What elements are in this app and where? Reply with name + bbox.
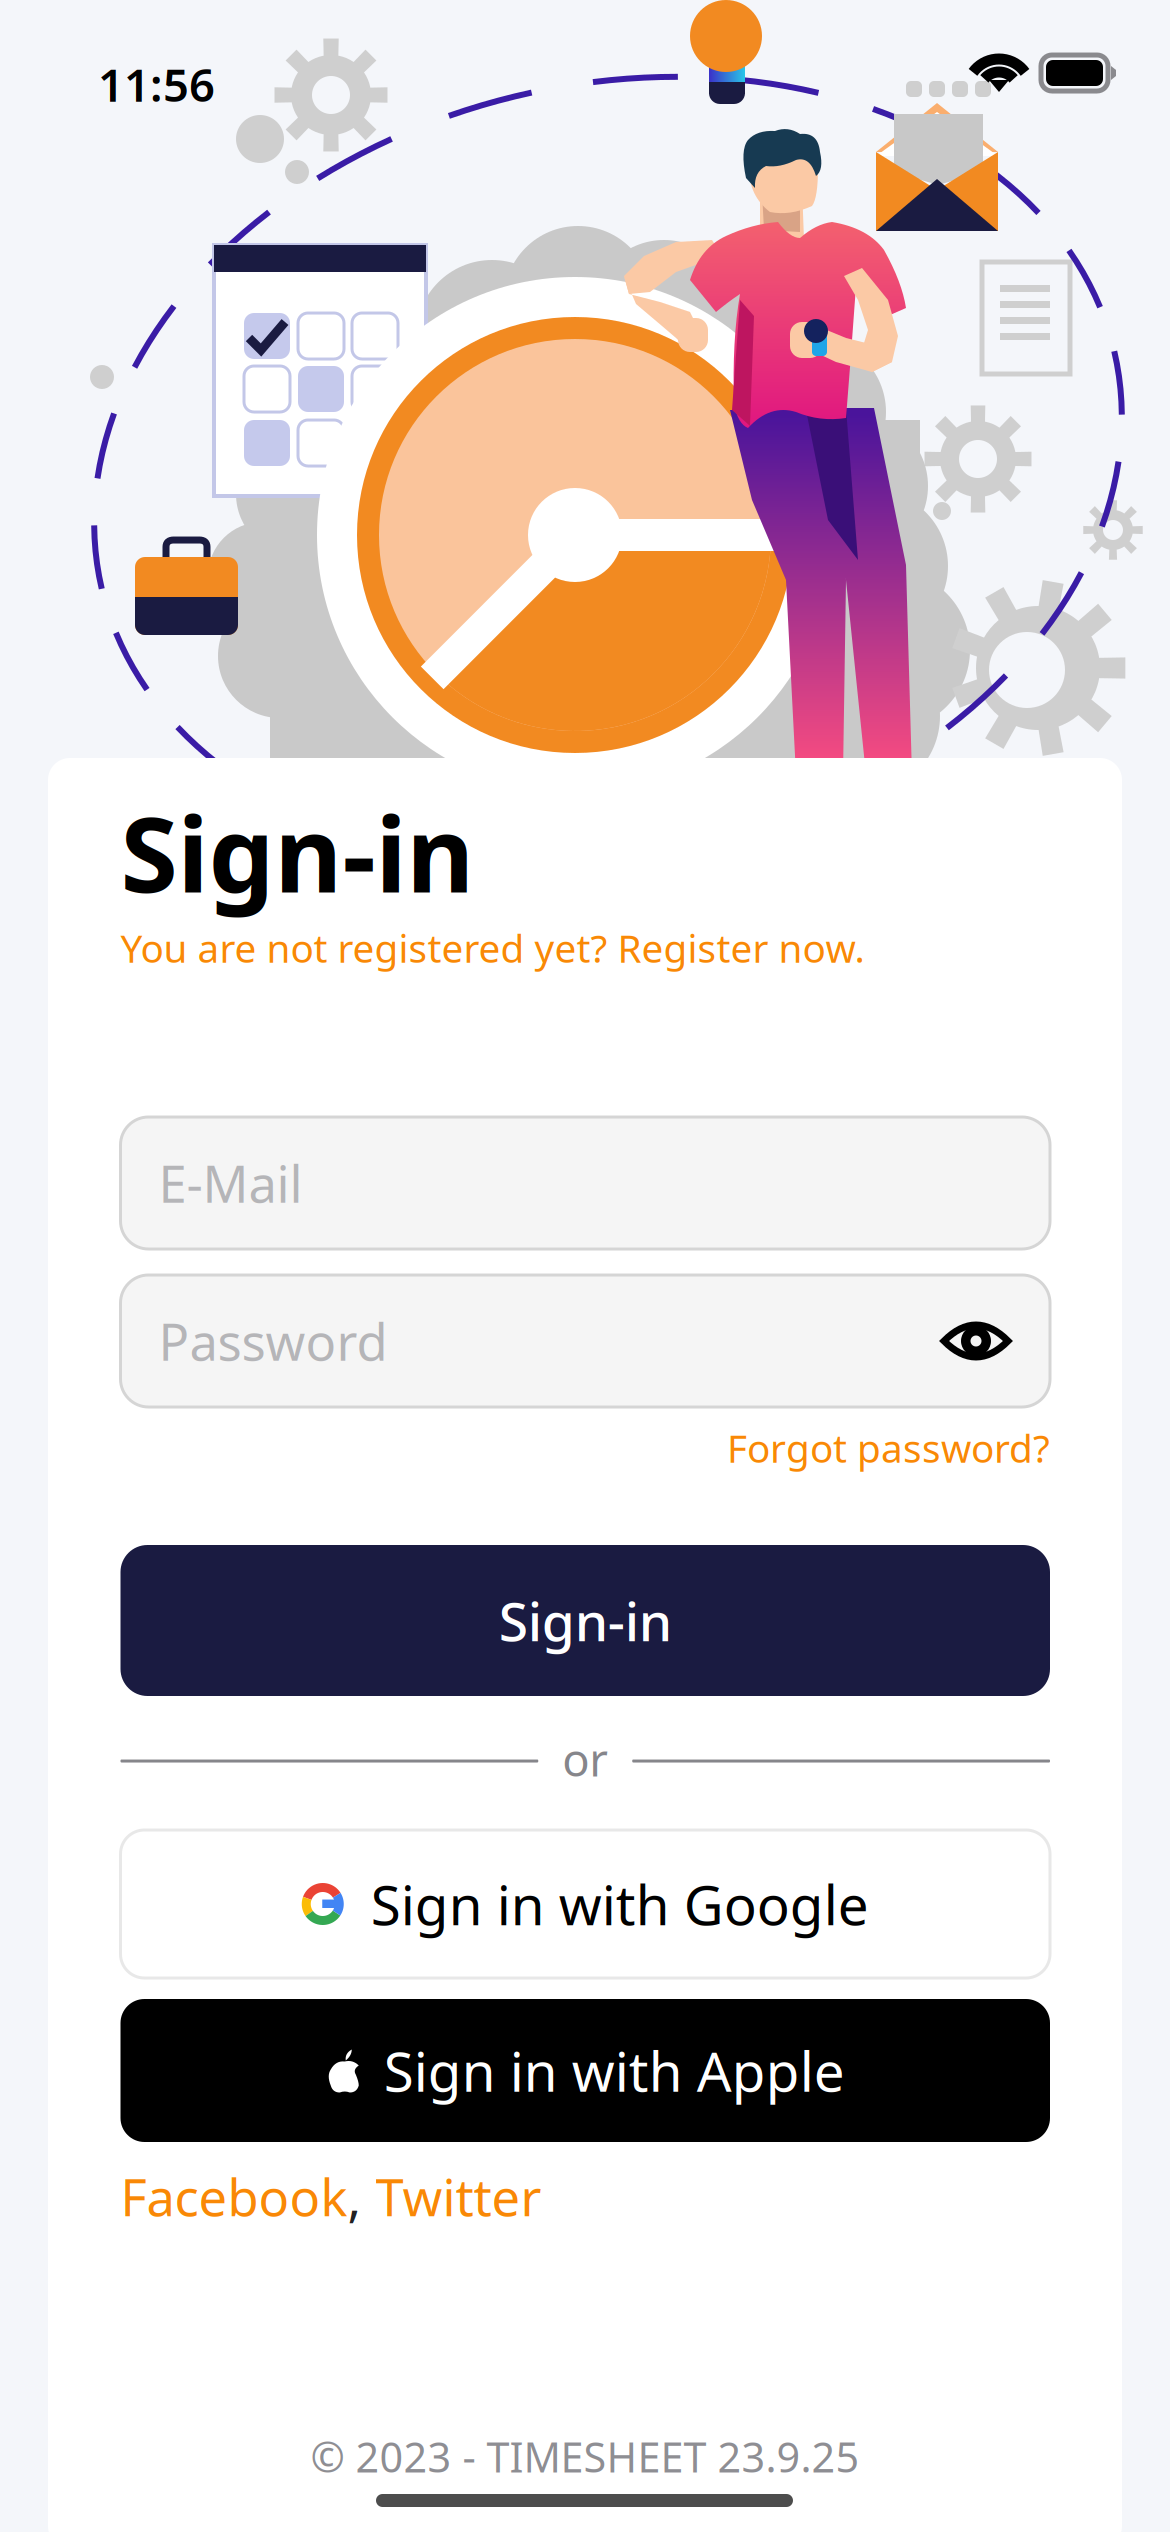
- staticText: ,: [347, 2163, 361, 2230]
- staticText: or: [562, 1729, 608, 1789]
- staticText: Forgot password?: [727, 1422, 1050, 1473]
- staticText: Sign-in: [499, 1585, 672, 1656]
- staticText: E-Mail: [158, 1149, 302, 1217]
- button[interactable]: Forgot password?: [727, 1422, 1050, 1473]
- button[interactable]: You are not registered yet? Register now…: [120, 922, 864, 973]
- button[interactable]: Facebook: [120, 2163, 347, 2230]
- staticText: Password: [158, 1307, 387, 1375]
- staticText: Twitter: [375, 2163, 541, 2230]
- staticText: © 2023 - TIMESHEET 23.9.25: [310, 2429, 859, 2484]
- button[interactable]: Sign in with Apple: [120, 1999, 1050, 2142]
- staticText: Facebook: [120, 2163, 347, 2230]
- button[interactable]: Twitter: [375, 2163, 541, 2230]
- staticText: Sign in with Apple: [384, 2034, 845, 2107]
- staticText: Sign-in: [120, 783, 474, 921]
- button[interactable]: Sign-in: [120, 1545, 1050, 1696]
- staticText: 11:56: [98, 54, 215, 114]
- staticText: You are not registered yet? Register now…: [120, 922, 864, 973]
- button[interactable]: Sign in with Google: [120, 1830, 1050, 1978]
- staticText: Sign in with Google: [371, 1868, 869, 1940]
